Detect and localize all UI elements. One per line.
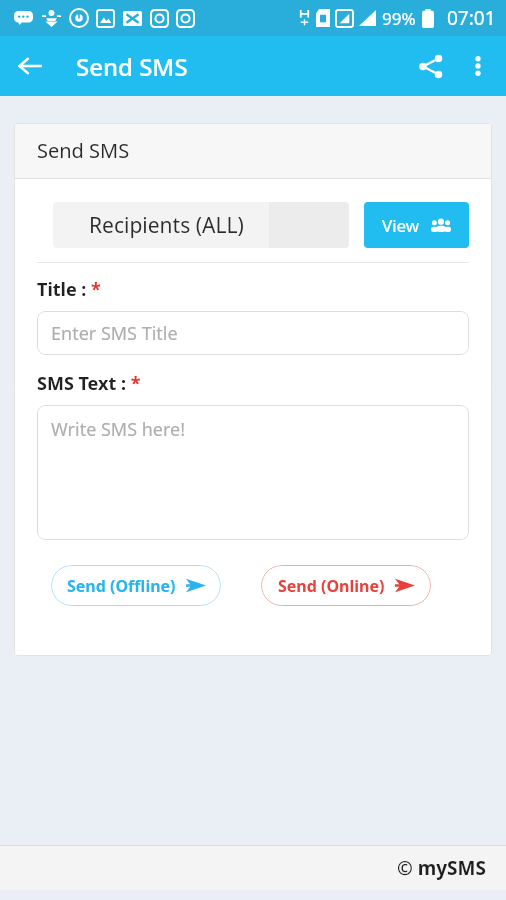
button[interactable]: Send (Online): [261, 565, 431, 606]
button[interactable]: Enter SMS Title: [37, 311, 469, 355]
staticText: Send (Online): [278, 575, 385, 597]
staticText: Enter SMS Title: [51, 321, 178, 346]
staticText: Send (Offline): [67, 575, 176, 597]
staticText: View: [382, 214, 420, 237]
button[interactable]: Back: [6, 42, 54, 90]
staticText: 07:01: [447, 5, 496, 31]
staticText: SMS Text : *: [37, 371, 141, 396]
button[interactable]: Recipients (ALL): [53, 202, 349, 248]
staticText: 99%: [382, 7, 416, 30]
staticText: Write SMS here!: [51, 417, 186, 442]
staticText: Send SMS: [76, 50, 188, 83]
staticText: © mySMS: [397, 855, 486, 881]
staticText: Title : *: [37, 277, 101, 302]
button[interactable]: Send (Offline): [51, 565, 221, 606]
button[interactable]: Share: [406, 42, 454, 90]
button[interactable]: More options: [454, 42, 502, 90]
staticText: Send SMS: [37, 137, 130, 164]
button[interactable]: Write SMS here!: [37, 405, 469, 540]
staticText: Recipients (ALL): [89, 211, 244, 240]
button[interactable]: View: [364, 202, 469, 248]
